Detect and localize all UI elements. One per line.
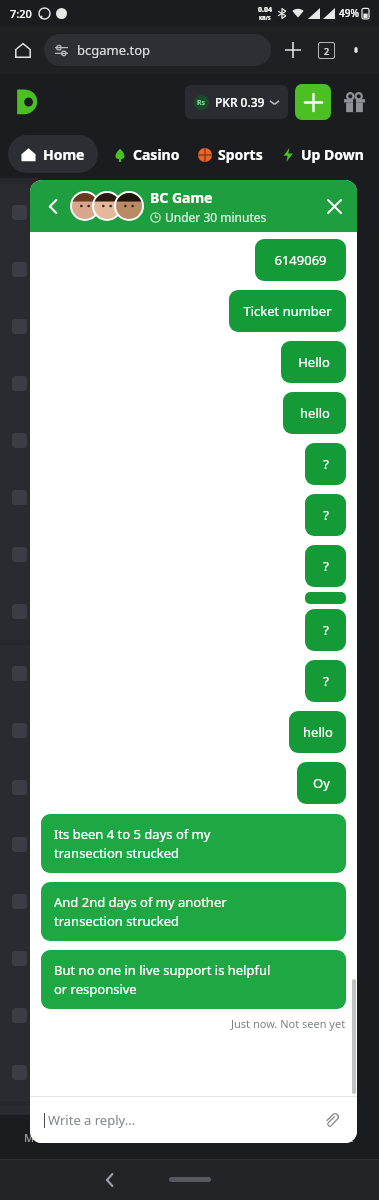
button[interactable]: Chat xyxy=(303,1115,379,1159)
staticText: 7:20 xyxy=(10,6,32,21)
staticText: And 2nd days of my another transection s… xyxy=(54,893,227,930)
staticText: Under 30 minutes xyxy=(165,209,267,225)
staticText: Wallet xyxy=(173,1130,206,1145)
button[interactable]: Casino xyxy=(110,145,183,164)
staticText: hello xyxy=(303,723,333,741)
button[interactable]: Write a reply... xyxy=(30,1097,357,1143)
button[interactable]: ? xyxy=(305,660,346,702)
button[interactable]: Oy xyxy=(297,762,346,804)
staticText: ? xyxy=(323,455,329,473)
staticText: Write a reply... xyxy=(48,1111,136,1129)
staticText: 0.04 xyxy=(258,5,272,15)
button[interactable]: And 2nd days of my another transection s… xyxy=(41,882,346,941)
staticText: Ticket number xyxy=(243,302,332,320)
staticText: Casino xyxy=(133,145,180,164)
button[interactable]: More options xyxy=(343,37,369,63)
staticText: KB/S xyxy=(259,15,271,22)
button[interactable]: Sports xyxy=(195,145,266,164)
button[interactable]: BC Game logo xyxy=(10,85,44,119)
staticText: Home xyxy=(43,145,85,164)
button[interactable]: Home gesture xyxy=(169,1177,211,1182)
staticText: PKR 0.39 xyxy=(215,94,265,110)
button[interactable]: Home xyxy=(10,37,36,63)
button[interactable]: But no one in live support is helpful or… xyxy=(41,950,346,1009)
staticText: More xyxy=(24,1130,52,1145)
button[interactable]: Deposit xyxy=(295,84,331,120)
button[interactable]: Rs xyxy=(185,85,288,119)
staticText: 2 xyxy=(324,45,330,57)
button[interactable]: Wallet xyxy=(151,1115,227,1159)
button[interactable]: Close xyxy=(319,191,349,221)
staticText: Hello xyxy=(298,353,330,371)
staticText: Home xyxy=(97,1130,129,1145)
staticText: ? xyxy=(323,506,329,524)
staticText: Account xyxy=(244,1130,287,1145)
staticText: Its been 4 to 5 days of my transection s… xyxy=(54,825,211,862)
staticText: 6149069 xyxy=(274,251,327,269)
button[interactable]: ? xyxy=(305,494,346,536)
staticText: ? xyxy=(323,557,329,575)
button[interactable]: Its been 4 to 5 days of my transection s… xyxy=(41,814,346,873)
button[interactable]: Home xyxy=(75,1115,151,1159)
staticText: BC Game xyxy=(150,188,213,207)
button[interactable]: Ticket number xyxy=(229,290,346,332)
staticText: Oy xyxy=(313,774,330,792)
button[interactable]: Account xyxy=(227,1115,303,1159)
staticText: Sports xyxy=(218,145,263,164)
button[interactable]: hello xyxy=(289,711,346,753)
staticText: Chat xyxy=(329,1130,354,1145)
button[interactable]: ? xyxy=(305,609,346,651)
button[interactable]: More xyxy=(0,1115,75,1159)
staticText: Just now. Not seen yet xyxy=(231,1016,346,1031)
button[interactable]: Hello xyxy=(281,341,346,383)
button[interactable]: hello xyxy=(283,392,346,434)
staticText: hello xyxy=(300,404,330,422)
button[interactable]: ? xyxy=(305,443,346,485)
button[interactable]: Back xyxy=(99,1169,121,1191)
button[interactable]: Back xyxy=(38,191,68,221)
button[interactable]: Up Down xyxy=(278,145,367,164)
staticText: bcgame.top xyxy=(77,41,151,59)
button[interactable]: Attach file xyxy=(319,1108,343,1132)
staticText: ? xyxy=(323,672,329,690)
staticText: Up Down xyxy=(301,145,364,164)
button[interactable]: New tab xyxy=(279,36,307,64)
staticText: ? xyxy=(323,621,329,639)
staticText: But no one in live support is helpful or… xyxy=(54,961,271,998)
button[interactable]: ? xyxy=(305,545,346,587)
button[interactable] xyxy=(305,592,346,604)
button[interactable]: Gifts xyxy=(339,87,369,117)
button[interactable]: bcgame.top xyxy=(44,34,271,66)
button[interactable]: 6149069 xyxy=(255,239,346,281)
staticText: 49% xyxy=(339,6,359,20)
staticText: Rs xyxy=(197,98,206,108)
button[interactable]: Tabs xyxy=(313,37,339,63)
button[interactable]: Home xyxy=(8,135,98,173)
